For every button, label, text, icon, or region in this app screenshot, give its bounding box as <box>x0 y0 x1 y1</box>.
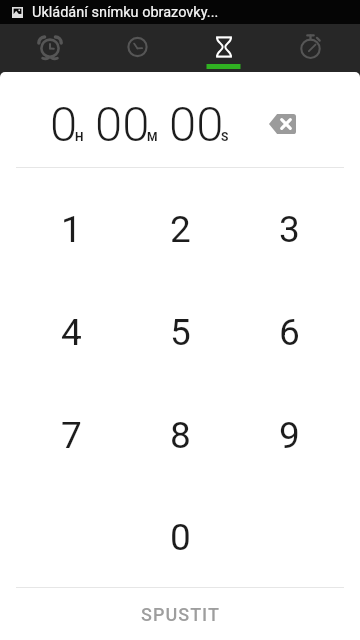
button[interactable]: 4 <box>16 281 126 384</box>
staticText: 2 <box>170 208 191 251</box>
staticText: 9 <box>279 414 300 457</box>
staticText: 1 <box>61 208 82 251</box>
button[interactable]: 3 <box>235 178 344 281</box>
staticText: 3 <box>279 208 300 251</box>
staticText: M <box>147 130 158 144</box>
staticText: 6 <box>279 311 300 354</box>
staticText: H <box>75 130 84 144</box>
staticText: S <box>221 130 229 144</box>
staticText: 7 <box>61 414 82 457</box>
button[interactable]: 6 <box>235 281 344 384</box>
staticText: SPUSTIT <box>141 604 220 625</box>
staticText: 8 <box>170 414 191 457</box>
button[interactable]: 8 <box>126 384 235 487</box>
button[interactable]: SPUSTIT <box>0 588 360 640</box>
staticText: 5 <box>170 311 191 354</box>
button[interactable]: Backspace <box>260 102 304 146</box>
button[interactable]: 0 <box>126 487 235 587</box>
button[interactable]: 2 <box>126 178 235 281</box>
button[interactable]: 5 <box>126 281 235 384</box>
staticText: 0 <box>50 96 78 153</box>
button[interactable]: 9 <box>235 384 344 487</box>
staticText: 4 <box>61 311 82 354</box>
staticText: 00 <box>169 96 224 153</box>
button[interactable]: Stopwatch <box>270 24 360 72</box>
button[interactable]: Clock <box>90 24 180 72</box>
button[interactable]: 1 <box>16 178 126 281</box>
staticText: 00 <box>95 96 150 153</box>
staticText: Ukládání snímku obrazovky... <box>32 4 219 21</box>
button[interactable]: 7 <box>16 384 126 487</box>
staticText: 0 <box>170 516 191 559</box>
button[interactable]: Timer <box>180 24 270 72</box>
button[interactable]: Alarm <box>0 24 90 72</box>
